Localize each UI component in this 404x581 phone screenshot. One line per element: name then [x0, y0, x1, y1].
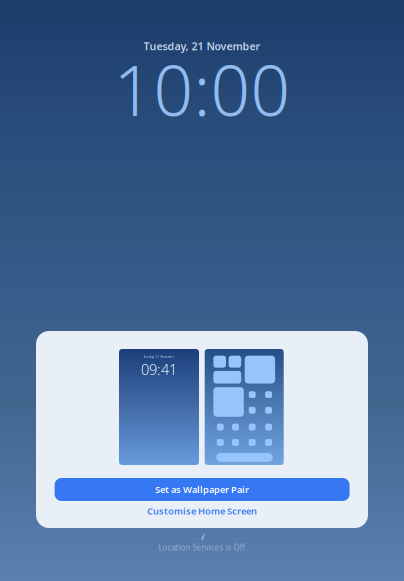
button[interactable]: Set as Wallpaper Pair [55, 478, 350, 501]
button[interactable]: Customise Home Screen [55, 503, 350, 519]
staticText: Tuesday, 21 November [143, 355, 174, 359]
staticText: Tuesday, 21 November [143, 39, 260, 53]
staticText: Location Services is Off [158, 542, 245, 553]
staticText: Customise Home Screen [147, 505, 257, 517]
staticText: 09:41 [141, 360, 177, 379]
staticText: 10:00 [113, 43, 290, 135]
staticText: Set as Wallpaper Pair [155, 483, 249, 496]
